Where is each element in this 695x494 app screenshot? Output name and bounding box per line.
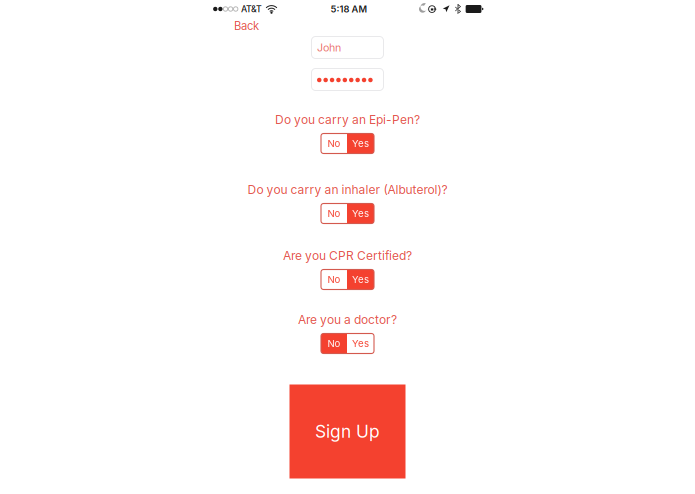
staticText: AT&T: [241, 4, 262, 14]
staticText: Do you carry an Epi-Pen?: [275, 112, 420, 127]
staticText: Are you CPR Certified?: [283, 248, 412, 263]
staticText: 5:18 AM: [330, 3, 367, 15]
staticText: Are you a doctor?: [298, 312, 397, 327]
staticText: Yes: [352, 274, 369, 285]
button[interactable]: Sign Up: [289, 384, 405, 478]
staticText: Yes: [352, 208, 369, 219]
button[interactable]: No: [321, 333, 347, 353]
staticText: Back: [234, 19, 259, 33]
staticText: Sign Up: [315, 421, 380, 442]
button[interactable]: Yes: [347, 133, 374, 153]
button[interactable]: No: [321, 203, 347, 223]
staticText: No: [327, 208, 340, 219]
button[interactable]: Yes: [347, 269, 374, 289]
staticText: John: [317, 41, 341, 54]
staticText: Yes: [352, 338, 369, 349]
staticText: No: [327, 274, 340, 285]
button[interactable]: Yes: [347, 333, 374, 353]
staticText: Yes: [352, 138, 369, 149]
button[interactable]: No: [321, 269, 347, 289]
staticText: Do you carry an inhaler (Albuterol)?: [247, 182, 447, 197]
button[interactable]: No: [321, 133, 347, 153]
staticText: No: [327, 338, 340, 349]
staticText: No: [327, 138, 340, 149]
button[interactable]: Back: [234, 18, 259, 34]
button[interactable]: Yes: [347, 203, 374, 223]
